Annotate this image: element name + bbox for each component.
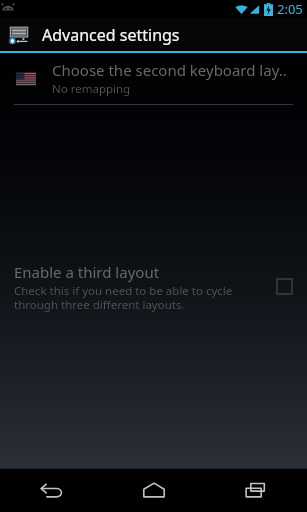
button[interactable]: Back <box>0 468 103 512</box>
button[interactable]: Choose the second keyboard lay.. <box>0 53 307 104</box>
staticText: 2:05 <box>277 0 303 18</box>
staticText: No remapping <box>52 81 131 97</box>
button[interactable]: Enable a third layout <box>0 105 307 468</box>
staticText: Check this if you need to be able to cyc… <box>14 283 233 312</box>
staticText: Choose the second keyboard lay.. <box>52 60 287 80</box>
staticText: Enable a third layout <box>14 262 160 282</box>
button[interactable]: Home <box>103 468 205 512</box>
button[interactable]: Recent apps <box>205 468 307 512</box>
button[interactable]: Toggle Enable a third layout <box>261 112 307 461</box>
staticText: Advanced settings <box>42 24 180 46</box>
button[interactable]: Advanced settings <box>0 18 307 51</box>
